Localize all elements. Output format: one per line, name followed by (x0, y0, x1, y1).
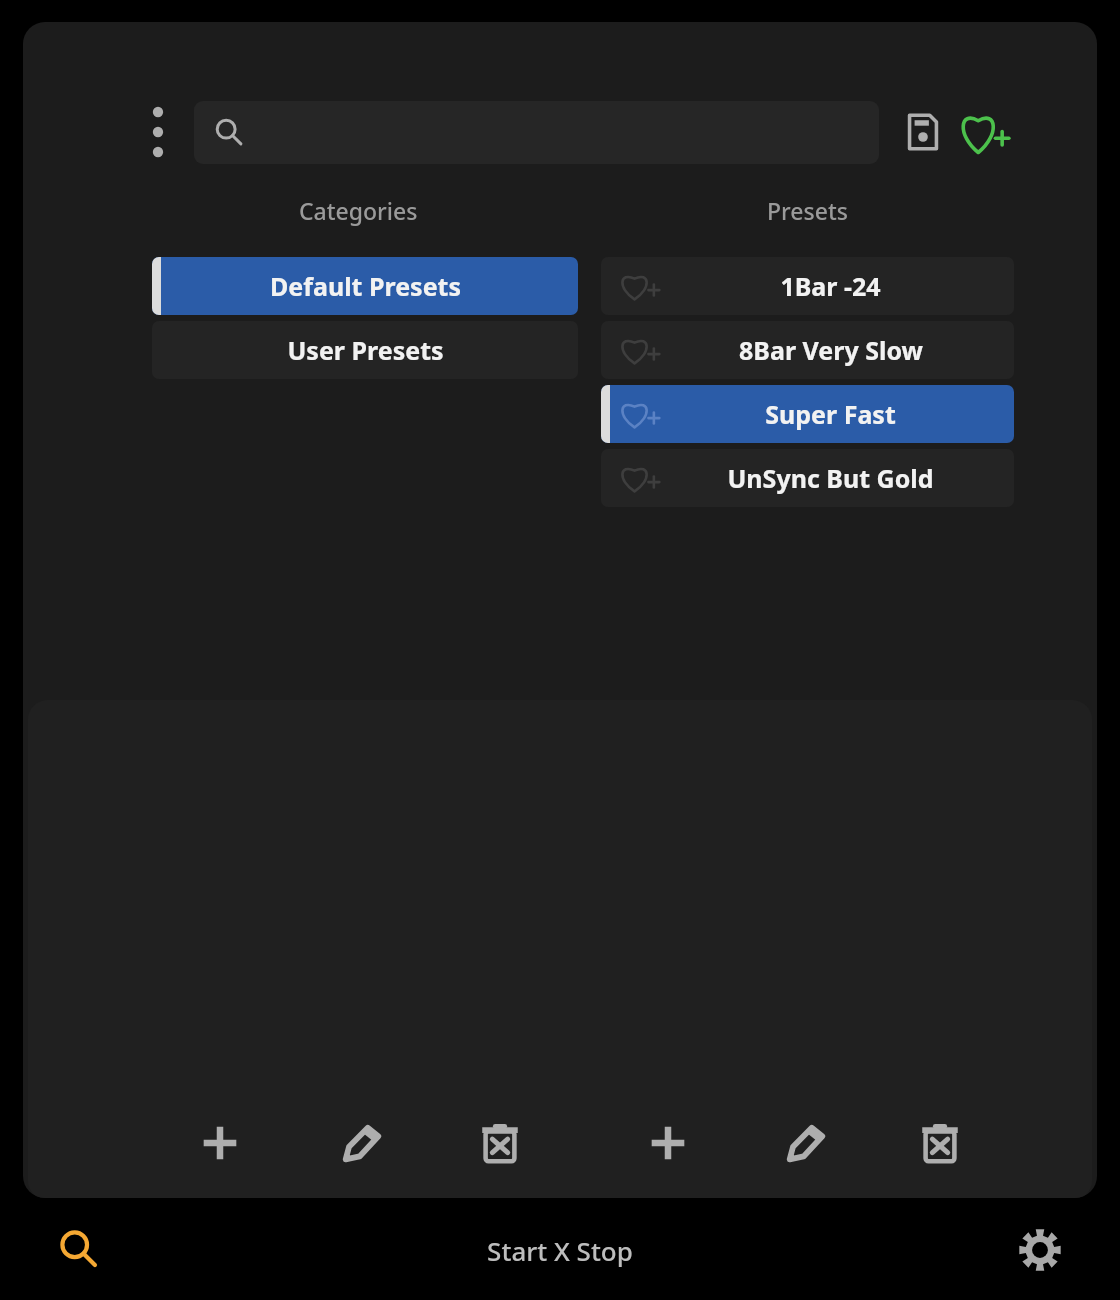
button[interactable]: Add category (186, 1109, 254, 1177)
button[interactable]: Default Presets (152, 257, 578, 315)
button[interactable]: Settings (996, 1214, 1084, 1286)
button[interactable]: Edit category (328, 1109, 396, 1177)
button[interactable]: Delete preset (906, 1109, 974, 1177)
button[interactable]: 1Bar -24 (601, 257, 1014, 315)
button[interactable]: 8Bar Very Slow (601, 321, 1014, 379)
button[interactable]: Start X Stop (400, 1214, 720, 1286)
button[interactable]: Add preset (634, 1109, 702, 1177)
button[interactable]: Super Fast (601, 385, 1014, 443)
button[interactable]: Search presets (194, 101, 879, 164)
button[interactable]: Search (36, 1214, 124, 1286)
staticText: Categories (299, 195, 418, 226)
button[interactable]: Save (893, 102, 953, 162)
staticText: Super Fast (765, 397, 896, 431)
staticText: 1Bar -24 (780, 269, 881, 303)
button[interactable]: User Presets (152, 321, 578, 379)
staticText: User Presets (287, 333, 444, 367)
staticText: Start X Stop (487, 1233, 633, 1268)
staticText: Presets (767, 195, 848, 226)
button[interactable]: Delete category (466, 1109, 534, 1177)
button[interactable]: More options (135, 94, 181, 170)
staticText: 8Bar Very Slow (739, 333, 923, 367)
button[interactable]: Add to favourites (955, 102, 1015, 162)
staticText: Default Presets (270, 269, 461, 303)
button[interactable]: UnSync But Gold (601, 449, 1014, 507)
button[interactable]: Edit preset (772, 1109, 840, 1177)
staticText: UnSync But Gold (727, 461, 934, 495)
